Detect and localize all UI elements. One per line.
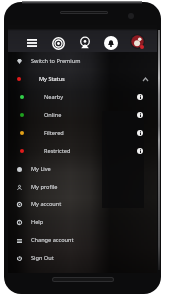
button[interactable]: Profile xyxy=(130,34,145,49)
staticText: Nearby xyxy=(44,93,64,101)
button[interactable]: Notifications xyxy=(104,36,118,50)
button[interactable]: Switch to Premium xyxy=(8,52,157,70)
staticText: Online xyxy=(44,111,62,119)
staticText: Change account xyxy=(31,236,74,244)
button[interactable]: Change account xyxy=(8,231,157,249)
button[interactable]: Restricted xyxy=(8,142,157,160)
staticText: Switch to Premium xyxy=(31,57,81,65)
button[interactable]: Online xyxy=(8,106,157,124)
staticText: My profile xyxy=(31,183,58,191)
staticText: My Status xyxy=(39,75,65,83)
staticText: My account xyxy=(31,200,62,208)
staticText: Help xyxy=(31,218,44,226)
button[interactable]: Help xyxy=(8,213,157,231)
button[interactable]: Camera xyxy=(77,35,93,51)
button[interactable]: My account xyxy=(8,195,157,213)
button[interactable]: Sign Out xyxy=(8,249,157,267)
button[interactable]: My profile xyxy=(8,178,157,196)
staticText: Filtered xyxy=(44,129,64,137)
button[interactable]: My Status xyxy=(8,70,157,88)
staticText: My Live xyxy=(31,165,51,173)
button[interactable]: Nearby xyxy=(8,88,157,106)
button[interactable]: Radar xyxy=(50,35,66,51)
staticText: Restricted xyxy=(44,147,71,155)
staticText: Sign Out xyxy=(31,254,54,262)
button[interactable]: Filtered xyxy=(8,124,157,142)
button[interactable]: My Live xyxy=(8,160,157,178)
button[interactable]: Open navigation menu xyxy=(24,35,40,51)
